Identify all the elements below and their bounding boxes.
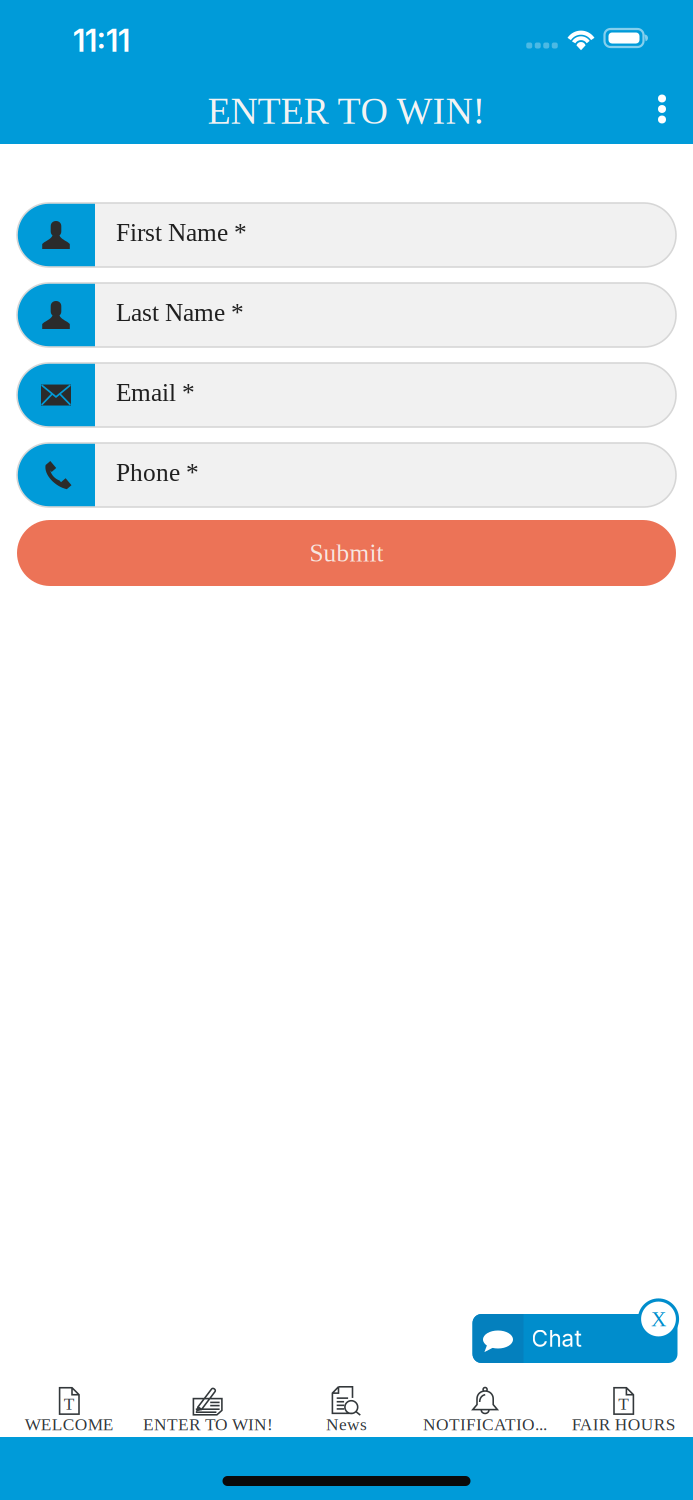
button[interactable]: ENTER TO WIN! xyxy=(139,1375,277,1437)
staticText: X xyxy=(651,1307,666,1331)
button[interactable]: More options xyxy=(631,76,693,146)
button[interactable]: Phone * xyxy=(17,443,676,507)
staticText: 11:11 xyxy=(73,22,130,59)
button[interactable]: Email * xyxy=(17,363,676,427)
staticText: Phone * xyxy=(116,458,199,487)
staticText: ENTER TO WIN! xyxy=(207,90,485,132)
button[interactable]: T xyxy=(554,1375,693,1437)
staticText: NOTIFICATIO... xyxy=(423,1415,547,1434)
button[interactable]: Submit xyxy=(17,520,676,586)
staticText: ENTER TO WIN! xyxy=(143,1415,273,1434)
staticText: T xyxy=(64,1394,75,1413)
staticText: Last Name * xyxy=(116,298,244,327)
staticText: First Name * xyxy=(116,218,247,247)
button[interactable]: News xyxy=(277,1375,416,1437)
button[interactable]: Close chat xyxy=(639,1299,677,1338)
button[interactable]: NOTIFICATIO... xyxy=(416,1375,554,1437)
staticText: Chat xyxy=(531,1325,581,1352)
staticText: News xyxy=(326,1415,367,1434)
button[interactable]: T xyxy=(0,1375,139,1437)
staticText: WELCOME xyxy=(25,1415,114,1434)
staticText: Email * xyxy=(116,378,195,407)
staticText: Submit xyxy=(309,539,383,567)
button[interactable]: Chat xyxy=(472,1299,677,1363)
button[interactable]: First Name * xyxy=(17,203,676,267)
button[interactable]: Last Name * xyxy=(17,283,676,347)
staticText: FAIR HOURS xyxy=(572,1415,676,1434)
staticText: T xyxy=(618,1394,629,1413)
